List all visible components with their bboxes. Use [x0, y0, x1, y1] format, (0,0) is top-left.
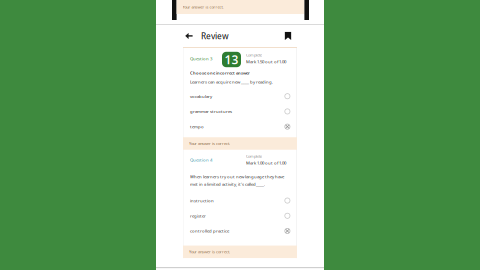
button[interactable]: Bookmark [281, 26, 295, 46]
staticText: Learners can acquire new ____ by reading… [190, 79, 273, 85]
button[interactable]: controlled practice [190, 223, 290, 239]
staticText: tempo [190, 124, 204, 129]
button[interactable]: register [190, 208, 290, 223]
button[interactable]: grammar structures [190, 104, 290, 119]
staticText: instruction [190, 198, 214, 203]
staticText: Choose one incorrect answer [190, 70, 250, 76]
staticText: Question 4 [190, 157, 212, 163]
staticText: Mark 1.50 out of 1.00 [246, 59, 286, 64]
staticText: Question 3 [190, 56, 212, 61]
staticText: vocabulary [190, 93, 212, 99]
staticText: register [190, 213, 206, 219]
button[interactable]: instruction [190, 193, 290, 208]
button[interactable]: Back [182, 26, 196, 46]
staticText: Your answer is correct. [189, 249, 230, 254]
staticText: Your answer is correct. [183, 4, 224, 10]
staticText: Mark 1.00 out of 1.00 [246, 160, 286, 166]
staticText: Complete [246, 154, 262, 159]
staticText: grammar structures [190, 108, 232, 114]
staticText: met in a limited activity, it's called__… [190, 181, 265, 187]
staticText: Review [201, 30, 229, 42]
button[interactable]: tempo [190, 119, 290, 134]
staticText: Your answer is correct. [189, 141, 230, 146]
button[interactable]: vocabulary [190, 89, 290, 104]
staticText: Complete [246, 52, 262, 58]
staticText: controlled practice [190, 228, 229, 234]
staticText: When learners try out new language they … [190, 174, 284, 179]
staticText: 13 [224, 51, 238, 68]
